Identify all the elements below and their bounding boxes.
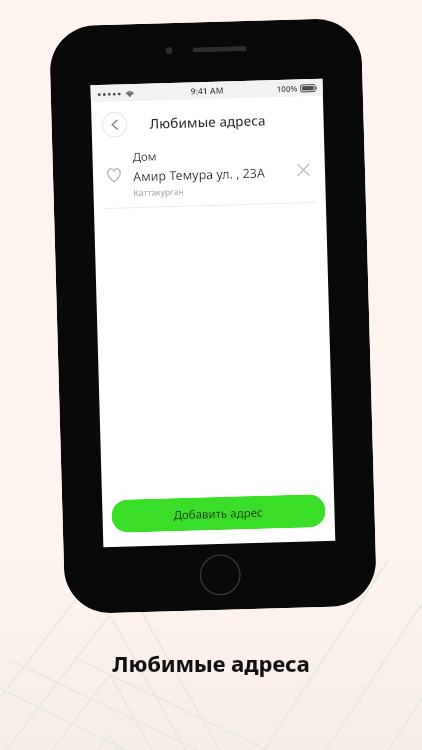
button[interactable]: Remove — [291, 157, 315, 182]
staticText: Каттакурган — [133, 186, 185, 199]
staticText: Любимые адреса — [149, 111, 266, 133]
staticText: Любимые адреса — [0, 648, 422, 678]
button[interactable]: Добавить адрес — [111, 494, 326, 533]
other: Home — [199, 553, 242, 596]
staticText: Добавить адрес — [173, 505, 264, 523]
staticText: 100% — [276, 82, 298, 94]
other: Favourite — [103, 163, 125, 186]
button[interactable]: Back — [101, 111, 128, 138]
staticText: Дом — [132, 148, 158, 165]
button[interactable]: Favourite — [92, 142, 326, 209]
staticText: Амир Темура ул. , 23А — [133, 164, 265, 185]
staticText: 9:41 AM — [191, 85, 224, 97]
